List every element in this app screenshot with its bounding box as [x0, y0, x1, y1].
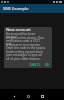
- staticText: all of your other devices.: [6, 57, 46, 61]
- button[interactable]: Recents: [37, 90, 47, 100]
- staticText: verification code is 6721 and: [6, 39, 46, 46]
- button[interactable]: Back: [9, 90, 19, 100]
- staticText: it expires in ten minutes.: [6, 43, 46, 47]
- staticText: SMS Example: [3, 6, 29, 11]
- staticText: for you on this device. Your: [6, 36, 46, 40]
- staticText: CANCEL: [29, 63, 41, 67]
- button[interactable]: CANCEL: [31, 63, 43, 67]
- staticText: OK: [45, 63, 50, 67]
- staticText: your messages in sync on: [6, 53, 46, 57]
- staticText: Enter the code in the app to: [6, 46, 46, 50]
- button[interactable]: OK: [47, 63, 52, 67]
- staticText: New account: [6, 27, 31, 32]
- button[interactable]: Home: [23, 90, 33, 100]
- staticText: An account has been created: [6, 32, 46, 39]
- staticText: finish setting up and keep: [6, 50, 46, 54]
